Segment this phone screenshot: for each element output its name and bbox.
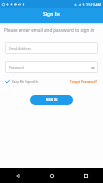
staticText: Email Address [9, 46, 31, 50]
button[interactable]: Back [0, 168, 35, 183]
button[interactable]: Keep Me Signed In [5, 79, 39, 84]
button[interactable]: SIGN IN [30, 95, 73, 105]
button[interactable]: Recent apps [69, 168, 103, 183]
button[interactable]: Show password [89, 64, 96, 71]
staticText: Sign In [43, 11, 60, 18]
button[interactable]: Email Address [5, 42, 98, 54]
button[interactable]: Home [35, 168, 69, 183]
staticText: SIGN IN [46, 98, 58, 102]
button[interactable]: Password [5, 61, 98, 73]
staticText: 11:10 AM [86, 2, 101, 7]
button[interactable]: Forgot Password? [70, 80, 97, 84]
staticText: Please enter email and password to sign … [4, 27, 95, 33]
staticText: Keep Me Signed In [12, 80, 39, 84]
staticText: Password [9, 65, 24, 69]
